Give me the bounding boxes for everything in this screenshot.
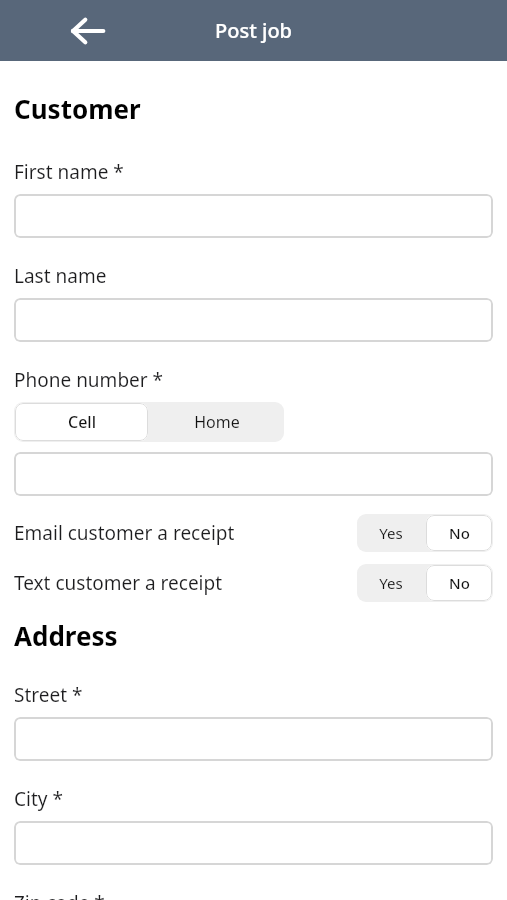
staticText: Home bbox=[194, 411, 240, 433]
button[interactable]: Home bbox=[150, 403, 283, 441]
staticText: First name * bbox=[14, 159, 124, 185]
staticText: Street * bbox=[14, 682, 83, 708]
button[interactable] bbox=[14, 717, 493, 761]
staticText: Cell bbox=[68, 411, 96, 433]
staticText: Text customer a receipt bbox=[14, 570, 357, 596]
staticText: Email customer a receipt bbox=[14, 520, 357, 546]
staticText: Post job bbox=[215, 17, 293, 44]
staticText: Customer bbox=[14, 91, 141, 126]
staticText: Phone number * bbox=[14, 367, 164, 393]
button[interactable]: No bbox=[426, 565, 492, 601]
button[interactable] bbox=[14, 452, 493, 496]
button[interactable] bbox=[14, 821, 493, 865]
button[interactable] bbox=[14, 194, 493, 238]
staticText: Yes bbox=[379, 523, 403, 543]
staticText: Last name bbox=[14, 263, 107, 289]
staticText: Address bbox=[14, 618, 118, 653]
button[interactable] bbox=[14, 298, 493, 342]
button[interactable]: Cell bbox=[15, 403, 148, 441]
staticText: City * bbox=[14, 786, 63, 812]
staticText: No bbox=[449, 523, 470, 543]
staticText: Zip code * bbox=[14, 890, 105, 900]
staticText: Yes bbox=[379, 573, 403, 593]
button[interactable]: Yes bbox=[358, 515, 424, 551]
staticText: No bbox=[449, 573, 470, 593]
button[interactable]: Back bbox=[62, 5, 114, 57]
button[interactable]: Yes bbox=[358, 565, 424, 601]
button[interactable]: No bbox=[426, 515, 492, 551]
